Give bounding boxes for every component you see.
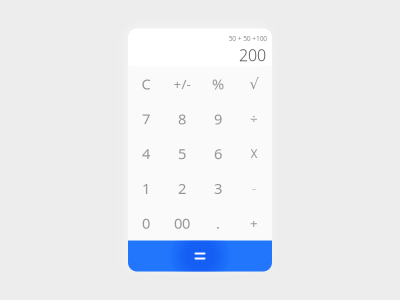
button[interactable]: 3: [200, 171, 236, 206]
button[interactable]: 8: [164, 101, 200, 136]
staticText: .: [216, 213, 220, 233]
staticText: 4: [142, 144, 150, 163]
staticText: √: [249, 76, 258, 92]
button[interactable]: Plus minus: [164, 66, 200, 101]
staticText: C: [141, 74, 150, 94]
button[interactable]: 2: [164, 171, 200, 206]
staticText: 1: [142, 179, 150, 198]
button[interactable]: 7: [128, 101, 164, 136]
staticText: %: [212, 74, 224, 94]
button[interactable]: Clear: [128, 66, 164, 101]
staticText: 2: [178, 179, 186, 198]
button[interactable]: 6: [200, 136, 236, 171]
staticText: 200: [239, 44, 266, 66]
button[interactable]: Decimal point: [200, 206, 236, 240]
staticText: 9: [214, 109, 222, 128]
staticText: +/-: [173, 75, 190, 93]
staticText: 00: [174, 213, 190, 233]
staticText: X: [250, 145, 257, 161]
button[interactable]: 4: [128, 136, 164, 171]
button[interactable]: Divide: [236, 101, 272, 136]
button[interactable]: Percent: [200, 66, 236, 101]
staticText: ÷: [250, 110, 258, 127]
staticText: 6: [214, 144, 222, 163]
staticText: 3: [214, 179, 222, 198]
button[interactable]: Multiply: [236, 136, 272, 171]
button[interactable]: Plus: [236, 206, 272, 240]
staticText: +: [250, 214, 258, 232]
staticText: 8: [178, 109, 186, 128]
button[interactable]: Square root: [236, 66, 272, 101]
staticText: -: [252, 179, 256, 197]
button[interactable]: Double zero: [164, 206, 200, 240]
button[interactable]: Equals: [128, 240, 272, 271]
button[interactable]: 0: [128, 206, 164, 240]
staticText: 0: [142, 213, 150, 233]
staticText: 50 + 50 +100: [229, 34, 267, 43]
button[interactable]: 9: [200, 101, 236, 136]
button[interactable]: 1: [128, 171, 164, 206]
staticText: 7: [142, 109, 150, 128]
button[interactable]: 5: [164, 136, 200, 171]
staticText: 5: [178, 144, 186, 163]
